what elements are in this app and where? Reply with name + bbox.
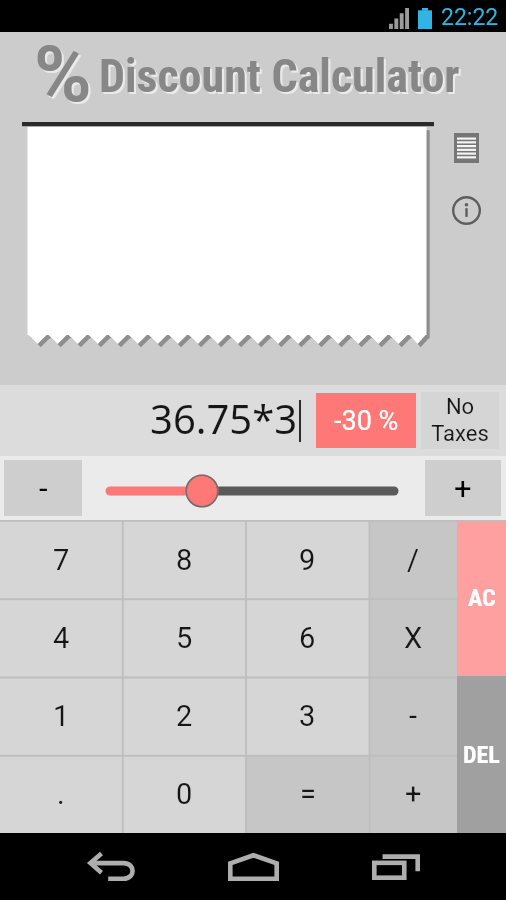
button[interactable]: 2 bbox=[122, 677, 246, 755]
staticText: -30 % bbox=[334, 405, 399, 437]
button[interactable]: Receipt list bbox=[443, 125, 489, 171]
button[interactable]: 7 bbox=[0, 520, 122, 599]
staticText: 1 bbox=[53, 699, 70, 733]
staticText: % bbox=[36, 31, 94, 121]
staticText: Discount Calculator bbox=[99, 49, 460, 103]
staticText: 22:22 bbox=[441, 4, 499, 31]
button[interactable]: 6 bbox=[246, 599, 369, 677]
button[interactable]: - bbox=[4, 460, 82, 516]
button[interactable]: 9 bbox=[246, 520, 369, 599]
staticText: 6 bbox=[299, 621, 316, 655]
staticText: 4 bbox=[53, 621, 70, 655]
staticText: DEL bbox=[463, 741, 500, 769]
button[interactable]: Back bbox=[65, 839, 160, 895]
staticText: X bbox=[404, 621, 423, 655]
button[interactable]: + bbox=[369, 755, 457, 833]
button[interactable]: 5 bbox=[122, 599, 246, 677]
staticText: 9 bbox=[299, 543, 316, 577]
button[interactable]: DEL bbox=[457, 676, 506, 833]
button[interactable]: Recent apps bbox=[348, 839, 443, 895]
staticText: 7 bbox=[53, 543, 70, 577]
staticText: = bbox=[300, 777, 316, 811]
staticText: / bbox=[407, 543, 419, 577]
button[interactable]: No Taxes bbox=[421, 392, 499, 449]
button[interactable]: . bbox=[0, 755, 122, 833]
button[interactable]: Info bbox=[443, 187, 489, 233]
button[interactable]: = bbox=[246, 755, 369, 833]
staticText: 3 bbox=[299, 699, 316, 733]
staticText: AC bbox=[468, 584, 496, 612]
staticText: 8 bbox=[176, 543, 193, 577]
staticText: 0 bbox=[176, 777, 193, 811]
button[interactable]: 8 bbox=[122, 520, 246, 599]
staticText: 36.75*3 bbox=[150, 391, 298, 445]
staticText: - bbox=[39, 470, 48, 506]
staticText: + bbox=[405, 777, 422, 811]
button[interactable]: Home bbox=[206, 839, 301, 895]
button[interactable]: / bbox=[369, 520, 457, 599]
staticText: 2 bbox=[176, 699, 193, 733]
staticText: % bbox=[34, 29, 92, 119]
button[interactable]: 0 bbox=[122, 755, 246, 833]
staticText: 5 bbox=[176, 621, 193, 655]
button[interactable]: X bbox=[369, 599, 457, 677]
button[interactable]: -30 % bbox=[316, 393, 416, 448]
staticText: - bbox=[409, 699, 418, 733]
button[interactable]: 3 bbox=[246, 677, 369, 755]
button[interactable]: - bbox=[369, 677, 457, 755]
button[interactable]: 1 bbox=[0, 677, 122, 755]
staticText: + bbox=[454, 470, 472, 506]
staticText: No Taxes bbox=[431, 394, 489, 447]
button[interactable]: AC bbox=[457, 520, 506, 676]
button[interactable]: 4 bbox=[0, 599, 122, 677]
button[interactable]: + bbox=[425, 460, 501, 516]
staticText: Discount Calculator bbox=[101, 51, 462, 105]
staticText: . bbox=[57, 777, 65, 811]
